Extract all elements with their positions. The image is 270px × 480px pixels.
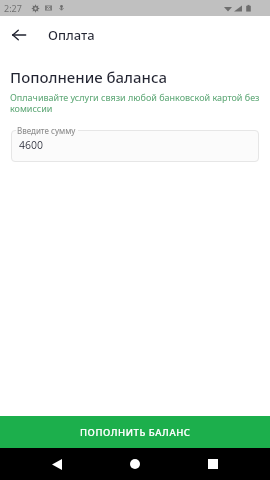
staticText: ПОПОЛНИТЬ БАЛАНС	[80, 426, 191, 439]
staticText: Оплачивайте услуги связи любой банковско…	[10, 91, 260, 115]
staticText: Введите сумму	[17, 125, 76, 136]
button[interactable]: Recents	[199, 450, 227, 478]
button[interactable]: Back	[43, 450, 71, 478]
button[interactable]: Home	[121, 450, 149, 478]
staticText: 4600	[19, 138, 44, 152]
staticText: 2:27	[4, 2, 22, 14]
button[interactable]: Back	[0, 16, 37, 53]
button[interactable]: ПОПОЛНИТЬ БАЛАНС	[0, 416, 270, 448]
staticText: Пополнение баланса	[10, 67, 168, 87]
staticText: Оплата	[48, 26, 95, 44]
